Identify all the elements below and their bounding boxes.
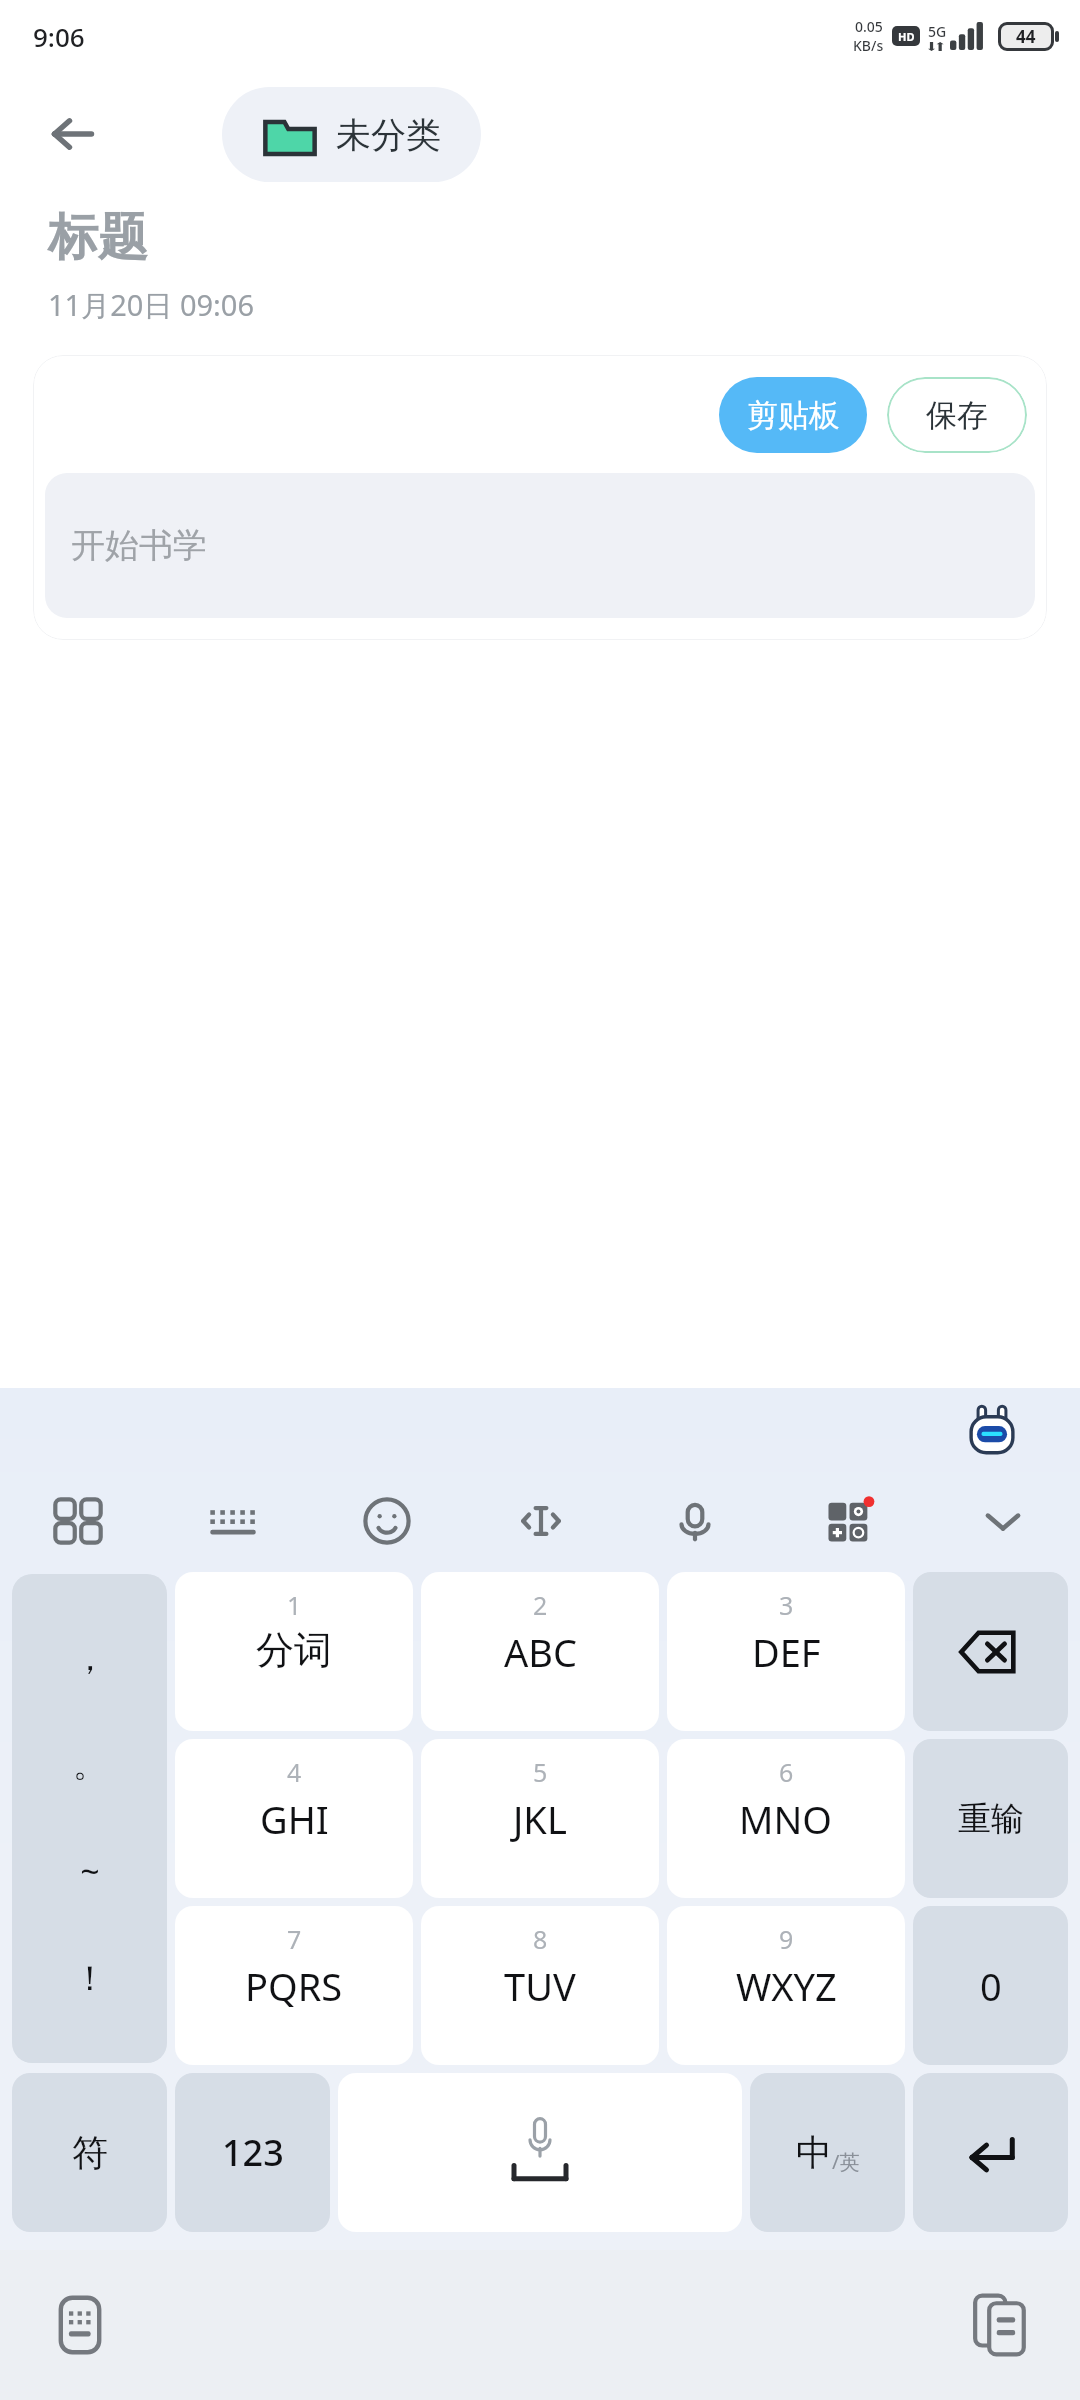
staticText: 4 <box>287 1755 302 1789</box>
staticText: ~ <box>80 1848 100 1894</box>
staticText: 分词 <box>256 1626 332 1674</box>
staticText: 123 <box>222 2128 284 2177</box>
button[interactable]: Apps <box>772 1478 926 1564</box>
button[interactable]: 9 <box>667 1906 905 2065</box>
staticText: /英 <box>832 2148 860 2175</box>
button[interactable]: Voice input <box>618 1478 772 1564</box>
button[interactable]: 保存 <box>887 377 1027 453</box>
button[interactable]: 中 <box>750 2073 905 2232</box>
button[interactable]: Keyboard switch <box>45 2290 115 2360</box>
staticText: 符 <box>72 2130 108 2175</box>
button[interactable]: 符 <box>12 2073 167 2232</box>
staticText: TUV <box>504 1960 576 2012</box>
button[interactable]: 剪贴板 <box>719 377 867 453</box>
staticText: 保存 <box>926 396 988 435</box>
button[interactable]: 8 <box>421 1906 659 2065</box>
staticText: KB/s <box>853 36 884 55</box>
staticText: 5 <box>533 1755 548 1789</box>
staticText: GHI <box>260 1793 329 1845</box>
button[interactable]: AI assistant <box>959 1400 1025 1466</box>
staticText: 0 <box>980 1960 1002 2012</box>
staticText: 44 <box>1016 25 1036 48</box>
button[interactable]: Emoji <box>310 1478 464 1564</box>
staticText: 5G <box>928 22 947 41</box>
staticText: ABC <box>504 1626 577 1678</box>
staticText: 11月20日 09:06 <box>48 285 255 325</box>
button[interactable]: 123 <box>175 2073 330 2232</box>
staticText: 标题 <box>48 206 148 269</box>
staticText: 3 <box>779 1588 794 1622</box>
button[interactable]: 未分类 <box>222 87 481 182</box>
staticText: 6 <box>779 1755 794 1789</box>
staticText: 2 <box>533 1588 548 1622</box>
staticText: 。 <box>73 1743 107 1786</box>
staticText: PQRS <box>245 1960 343 2012</box>
button[interactable]: Clipboard <box>965 2290 1035 2360</box>
button[interactable] <box>913 1572 1068 1731</box>
staticText: JKL <box>513 1793 567 1845</box>
staticText: 重输 <box>958 1798 1024 1840</box>
button[interactable]: Panels <box>0 1478 155 1564</box>
staticText: 8 <box>533 1922 548 1956</box>
staticText: 7 <box>287 1922 302 1956</box>
button[interactable]: 重输 <box>913 1739 1068 1898</box>
staticText: 0.05 <box>855 17 883 36</box>
button[interactable]: 0 <box>913 1906 1068 2065</box>
staticText: WXYZ <box>736 1960 837 2012</box>
button[interactable]: 4 <box>175 1739 413 1898</box>
button[interactable]: 7 <box>175 1906 413 2065</box>
staticText: 开始书学 <box>71 524 207 567</box>
staticText: 未分类 <box>336 113 441 157</box>
button[interactable]: 6 <box>667 1739 905 1898</box>
staticText: 剪贴板 <box>747 396 840 435</box>
button[interactable]: 5 <box>421 1739 659 1898</box>
staticText: DEF <box>752 1626 821 1678</box>
staticText: 9:06 <box>33 19 85 54</box>
staticText: MNO <box>739 1793 833 1845</box>
button[interactable]: Text cursor <box>464 1478 618 1564</box>
staticText: ， <box>73 1637 107 1680</box>
button[interactable]: Back <box>33 94 113 174</box>
button[interactable]: Keyboard layout <box>155 1478 310 1564</box>
button[interactable]: Space <box>338 2073 742 2232</box>
button[interactable]: 3 <box>667 1572 905 1731</box>
staticText: HD <box>898 29 915 44</box>
button[interactable] <box>913 2073 1068 2232</box>
button[interactable]: 开始书学 <box>45 473 1035 618</box>
staticText: 中 <box>796 2130 832 2175</box>
staticText: ！ <box>73 1957 107 2000</box>
button[interactable]: 2 <box>421 1572 659 1731</box>
staticText: 9 <box>779 1922 794 1956</box>
button[interactable]: ， <box>12 1574 167 2063</box>
staticText: 1 <box>287 1588 302 1622</box>
button[interactable]: 1 <box>175 1572 413 1731</box>
button[interactable]: Collapse keyboard <box>926 1478 1080 1564</box>
